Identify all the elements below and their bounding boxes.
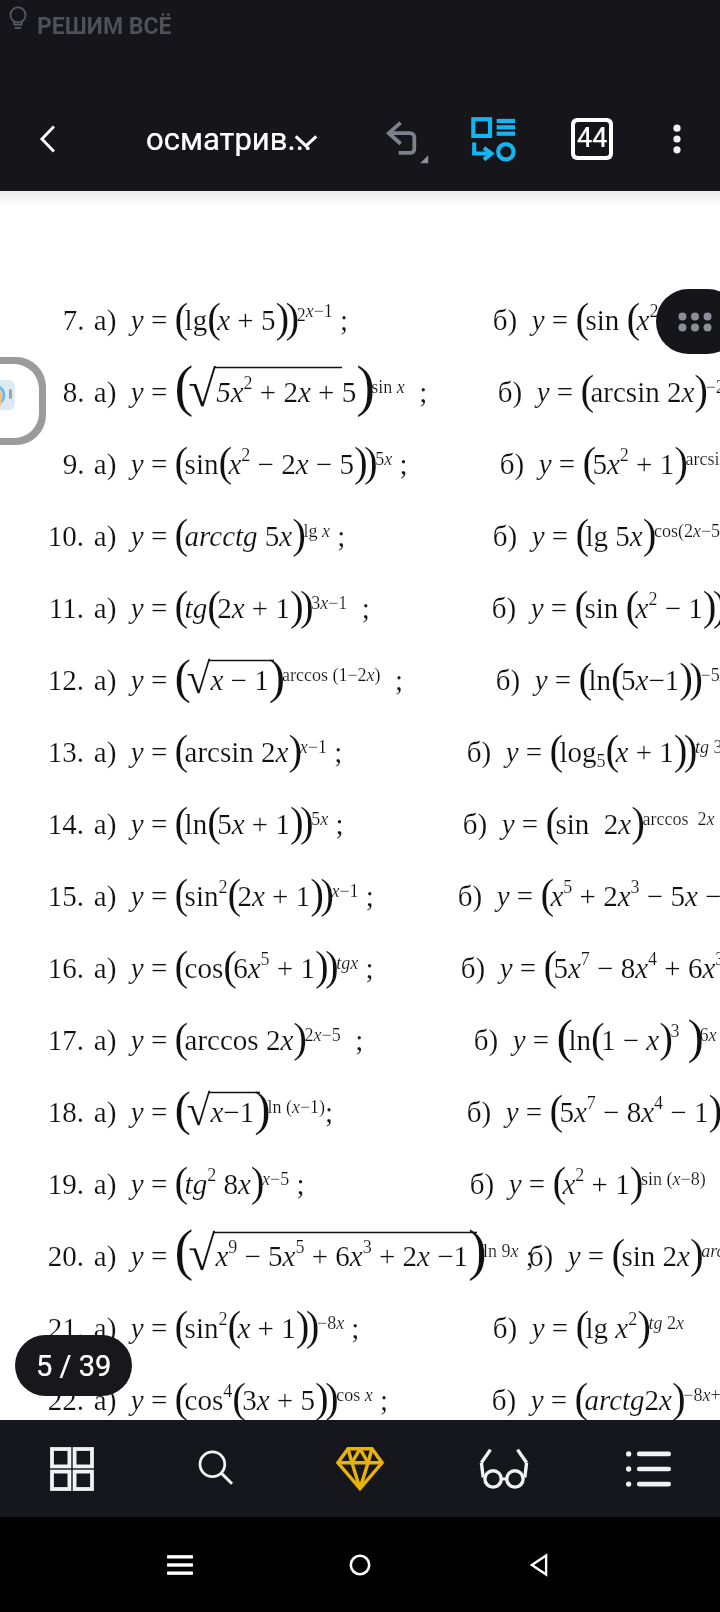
staticText: (б) y = (x2 + 1) sin (x−8) — [451, 1144, 706, 1207]
staticText: (10. — [29, 496, 85, 559]
staticText: (12. — [29, 640, 85, 703]
button[interactable]: More options — [641, 96, 713, 182]
staticText: (a) y = (lg(x + 5)) 2x−1 ; — [75, 280, 349, 343]
button[interactable]: Home — [325, 1543, 395, 1587]
staticText: (a) y = (cos4(3x + 5)) cos x ; — [75, 1360, 389, 1423]
staticText: (21. — [29, 1288, 85, 1351]
button[interactable]: Convert — [458, 96, 530, 182]
staticText: (17. — [29, 1000, 85, 1063]
button[interactable]: Contents — [576, 1420, 720, 1517]
staticText: (a) y = (tg2 8x) x−5 ; — [75, 1144, 305, 1207]
staticText: 5 / 39 — [36, 1349, 112, 1383]
staticText: (б) y = (ln(1 − x) 3 )6x — [455, 1000, 717, 1064]
staticText: (a) y = (√5x2 + 2x + 5) sin x ; — [75, 352, 428, 417]
staticText: (9. — [44, 424, 85, 487]
button[interactable]: Undo — [373, 96, 451, 182]
button[interactable]: Premium — [288, 1420, 432, 1517]
staticText: (б) y = (lg 5x) cos(2x−5) — [474, 496, 720, 559]
staticText: осматрив... — [146, 121, 312, 157]
staticText: (б) y = (ln(5x−1)) −5x−1 — [477, 640, 720, 703]
button[interactable]: Back — [505, 1543, 575, 1587]
button[interactable]: осматрив... — [140, 96, 325, 182]
staticText: (a) y = (√x−1) ln (x−1); — [75, 1072, 334, 1136]
staticText: (19. — [29, 1144, 85, 1207]
button[interactable]: Grid view — [0, 1420, 144, 1517]
staticText: (б) y = (log5(x + 1)) tg 3x — [448, 712, 720, 775]
button[interactable]: Back — [8, 96, 88, 182]
staticText: (a) y = (sin2(x + 1)) −8x ; — [75, 1288, 360, 1351]
staticText: (20. — [29, 1216, 85, 1279]
button[interactable]: Drag handle — [656, 289, 720, 354]
staticText: (a) y = (arcctg 5x) lg x ; — [75, 496, 346, 559]
staticText: (15. — [29, 856, 85, 919]
staticText: РЕШИМ ВСЁ — [37, 13, 172, 40]
staticText: (18. — [29, 1072, 85, 1135]
staticText: (16. — [29, 928, 85, 991]
button[interactable]: Search — [144, 1420, 288, 1517]
staticText: (б) y = (sin (x2 + 3)) — [474, 280, 720, 343]
staticText: (б) y = (lg x2) tg 2x — [474, 1288, 684, 1351]
staticText: (a) y = (√x9 − 5x5 + 6x3 + 2x −1) ln 9x … — [75, 1216, 534, 1281]
staticText: (б) y = (5x7 − 8x4 − 1) arcc — [448, 1072, 720, 1135]
button[interactable]: Recents — [145, 1543, 215, 1587]
staticText: (13. — [29, 712, 85, 775]
staticText: 44 — [577, 122, 608, 154]
staticText: (a) y = (sin(x2 − 2x − 5)) 5x ; — [75, 424, 408, 487]
staticText: (a) y = (√x − 1) arccos (1−2x) ; — [75, 640, 404, 704]
staticText: (a) y = (ln(5x + 1)) 5x ; — [75, 784, 344, 847]
staticText: (б) y = (sin 2x) arccos 2x — [444, 784, 715, 847]
staticText: (a) y = (tg(2x + 1)) 3x−1 ; — [75, 568, 370, 631]
staticText: (8. — [44, 352, 85, 415]
button[interactable]: Reading mode — [432, 1420, 576, 1517]
staticText: (б) y = (5x7 − 8x4 + 6x3 −1 — [442, 928, 720, 991]
staticText: (a) y = (sin2(2x + 1)) x−1 ; — [75, 856, 374, 919]
staticText: (б) y = (sin 2x) arctg ( — [510, 1216, 720, 1279]
staticText: (7. — [44, 280, 85, 343]
staticText: (a) y = (arccos 2x) 2x−5 ; — [75, 1000, 364, 1063]
staticText: (б) y = (5x2 + 1) arcsin 3x — [481, 424, 720, 487]
staticText: (б) y = (arcsin 2x) −2x−1 — [479, 352, 720, 415]
staticText: (б) y = (arctg2x) −8x+1 — [473, 1360, 720, 1423]
button[interactable]: Page 44 — [551, 96, 633, 182]
staticText: (a) y = (arcsin 2x) x−1 ; — [75, 712, 343, 775]
button[interactable]: Page 5 of 39 — [15, 1335, 132, 1396]
staticText: (a) y = (cos(6x5 + 1)) tgx ; — [75, 928, 374, 991]
staticText: (11. — [30, 568, 85, 631]
staticText: (б) y = (x5 + 2x3 − 5x − 4) 6 — [439, 856, 720, 919]
staticText: (22. — [29, 1360, 85, 1423]
button[interactable]: Assistant — [0, 364, 39, 438]
staticText: (14. — [29, 784, 85, 847]
staticText: (б) y = (sin (x2 − 1)) 3ctg — [473, 568, 720, 631]
